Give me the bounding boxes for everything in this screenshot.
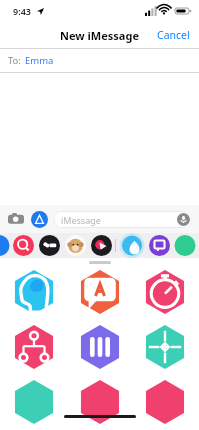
staticText: New iMessage xyxy=(60,28,139,43)
button[interactable]: Bars sticker xyxy=(78,325,122,369)
staticText: 9:43 xyxy=(13,5,31,17)
button[interactable]: Sticker xyxy=(12,380,56,424)
button[interactable]: Dictate xyxy=(177,213,190,226)
button[interactable]: iMessage xyxy=(54,211,192,228)
button[interactable]: Apple Pay xyxy=(39,235,60,256)
staticText: Emma xyxy=(25,54,54,67)
button[interactable]: Mind sticker xyxy=(12,270,56,314)
button[interactable]: Focus sticker xyxy=(143,325,187,369)
button[interactable]: Graph sticker xyxy=(12,325,56,369)
button[interactable]: Sticker xyxy=(143,380,187,424)
button[interactable]: Text sticker xyxy=(78,270,122,314)
button[interactable]: Photos app xyxy=(13,235,34,256)
button[interactable]: Sticker xyxy=(78,380,122,424)
button[interactable]: App Store xyxy=(31,211,48,228)
button[interactable]: Water app xyxy=(119,233,145,258)
button[interactable]: Cancel xyxy=(157,28,190,42)
button[interactable]: To: xyxy=(0,49,199,72)
button[interactable]: Timer sticker xyxy=(143,270,187,314)
button[interactable]: Twitch xyxy=(149,235,170,256)
staticText: iMessage xyxy=(61,214,101,226)
button[interactable]: Stickers xyxy=(91,235,112,256)
button[interactable]: Memoji xyxy=(65,235,86,256)
staticText: To: xyxy=(8,54,21,67)
staticText: Cancel xyxy=(157,28,190,42)
button[interactable]: Camera xyxy=(7,210,25,228)
